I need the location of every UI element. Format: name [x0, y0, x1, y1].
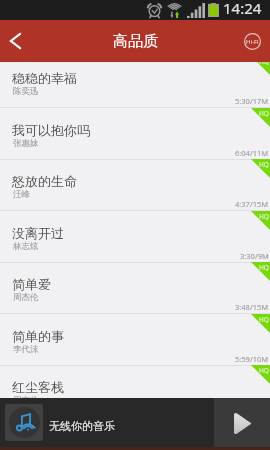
staticText: 5:59/10M	[235, 354, 269, 364]
staticText: 3:30/9M	[240, 251, 269, 261]
staticText: 没离开过	[12, 225, 64, 241]
staticText: 汪峰	[13, 189, 30, 200]
button[interactable]: 红尘客栈	[0, 365, 270, 398]
staticText: HQ	[259, 62, 269, 66]
button[interactable]: Hi-Fi	[236, 20, 270, 62]
staticText: 周杰伦	[13, 292, 39, 303]
button[interactable]: Play	[214, 398, 270, 447]
staticText: 3:48/15M	[235, 302, 269, 312]
button[interactable]: 稳稳的幸福	[0, 62, 270, 108]
staticText: 无线你的音乐	[49, 419, 115, 433]
staticText: 14:24	[223, 0, 262, 18]
staticText: 林志炫	[13, 241, 39, 252]
staticText: 红尘客栈	[12, 379, 64, 395]
staticText: 高品质	[113, 32, 158, 51]
button[interactable]: 我可以抱你吗	[0, 108, 270, 160]
staticText: 周杰伦	[13, 395, 39, 398]
staticText: 6:04/11M	[235, 148, 269, 158]
button[interactable]: 怒放的生命	[0, 159, 270, 211]
staticText: 5:30/17M	[235, 96, 269, 106]
staticText: 简单爱	[12, 276, 51, 292]
staticText: 张惠妹	[13, 138, 39, 149]
staticText: 怒放的生命	[12, 173, 77, 189]
staticText: 稳稳的幸福	[12, 70, 77, 86]
button[interactable]: 简单爱	[0, 262, 270, 314]
button[interactable]: 无线你的音乐	[0, 398, 214, 447]
staticText: 4:37/15M	[235, 199, 269, 209]
staticText: HQ	[259, 109, 269, 118]
staticText: 李代沫	[13, 344, 39, 355]
staticText: HQ	[259, 315, 269, 324]
staticText: HQ	[259, 160, 269, 169]
button[interactable]: 简单的事	[0, 314, 270, 366]
button[interactable]: Back	[0, 20, 34, 62]
button[interactable]: 没离开过	[0, 211, 270, 263]
staticText: 简单的事	[12, 328, 64, 344]
staticText: HQ	[259, 212, 269, 221]
staticText: 我可以抱你吗	[12, 122, 90, 138]
staticText: HQ	[259, 366, 269, 375]
staticText: HQ	[259, 263, 269, 272]
staticText: Hi-Fi	[246, 38, 259, 46]
staticText: 陈奕迅	[13, 86, 39, 97]
